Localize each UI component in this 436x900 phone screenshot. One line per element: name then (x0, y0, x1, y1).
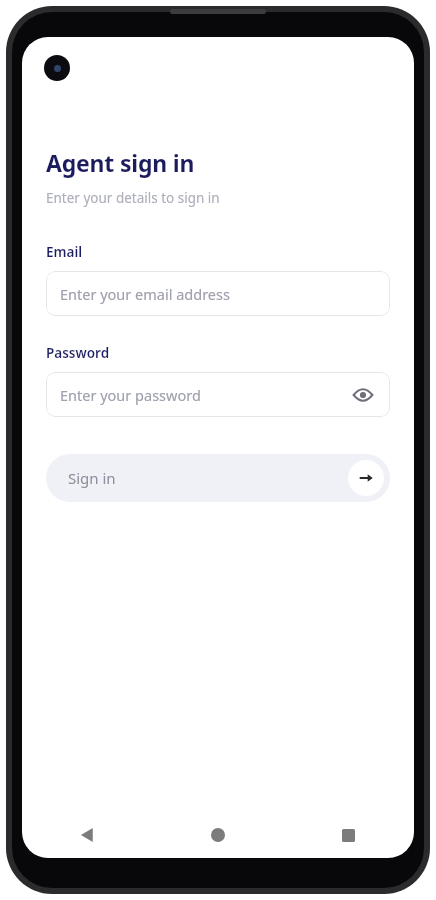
button[interactable]: Back (22, 812, 152, 858)
staticText: Agent sign in (46, 147, 195, 178)
staticText: Enter your password (60, 385, 201, 405)
button[interactable]: Show password (350, 382, 376, 408)
staticText: Password (46, 344, 110, 362)
button[interactable]: Recent apps (283, 812, 414, 858)
staticText: Enter your details to sign in (46, 189, 220, 207)
staticText: Email (46, 243, 83, 261)
button[interactable]: Enter your email address (46, 271, 390, 316)
staticText: Sign in (68, 468, 116, 488)
button[interactable]: Sign in (46, 454, 390, 502)
button[interactable]: Home (152, 812, 283, 858)
button[interactable]: Enter your password (46, 372, 390, 417)
staticText: Enter your email address (60, 284, 230, 304)
